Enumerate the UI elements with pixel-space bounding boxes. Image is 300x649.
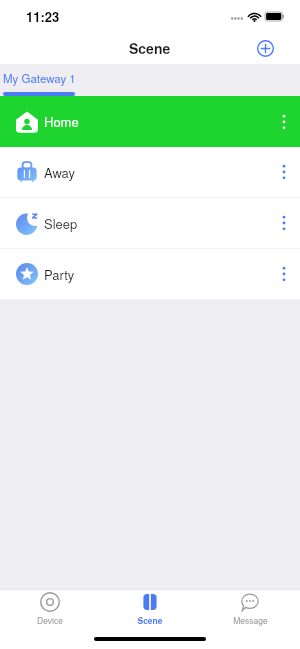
staticText: Scene: [129, 38, 171, 58]
button[interactable]: More options for Home: [272, 110, 296, 134]
button[interactable]: Home: [0, 96, 300, 147]
staticText: 11:23: [26, 7, 60, 26]
button[interactable]: Away: [0, 147, 300, 197]
staticText: Home: [44, 112, 79, 131]
staticText: Party: [44, 265, 75, 284]
button[interactable]: Party: [0, 249, 300, 299]
staticText: Away: [44, 163, 76, 182]
button[interactable]: Message: [200, 590, 300, 627]
button[interactable]: Sleep: [0, 198, 300, 248]
staticText: Sleep: [44, 214, 78, 233]
staticText: Scene: [137, 614, 163, 626]
staticText: Message: [233, 614, 268, 626]
button[interactable]: Device: [0, 590, 100, 627]
button[interactable]: Add scene: [253, 36, 277, 60]
button[interactable]: More options for Party: [272, 262, 296, 286]
button[interactable]: More options for Away: [272, 160, 296, 184]
staticText: Device: [37, 614, 63, 626]
button[interactable]: My Gateway 1: [3, 70, 76, 86]
button[interactable]: More options for Sleep: [272, 211, 296, 235]
button[interactable]: Scene: [100, 590, 200, 627]
